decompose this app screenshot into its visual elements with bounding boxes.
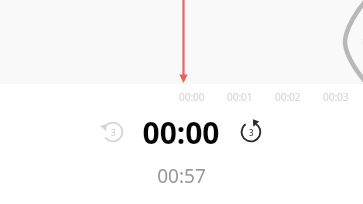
- staticText: 3: [249, 127, 254, 138]
- staticText: 00:00: [179, 90, 205, 104]
- button[interactable]: Replay 3 seconds: [98, 117, 128, 147]
- button[interactable]: [0, 0, 363, 84]
- staticText: 00:01: [227, 90, 253, 104]
- staticText: 00:03: [323, 90, 349, 104]
- staticText: 3: [111, 127, 116, 138]
- button[interactable]: 00:00: [142, 112, 220, 152]
- button[interactable]: Forward 3 seconds: [236, 117, 266, 147]
- staticText: 00:02: [275, 90, 301, 104]
- button[interactable]: 00:57: [157, 163, 206, 189]
